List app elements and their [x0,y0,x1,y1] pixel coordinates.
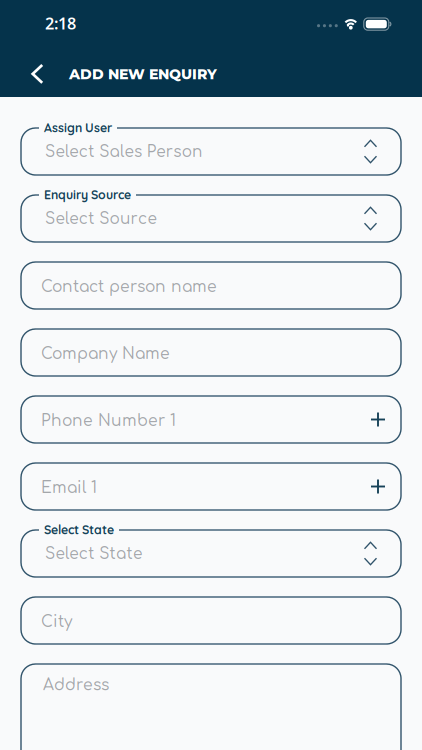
button[interactable]: Email 1 [21,463,401,510]
staticText: Select Source [45,211,156,228]
staticText: Select Sales Person [45,144,202,161]
button[interactable]: Select Source [21,195,401,242]
button[interactable]: Select Sales Person [21,128,401,175]
button[interactable] [0,0,54,21]
button[interactable]: Select State [21,530,401,577]
button[interactable]: Contact person name [21,262,401,309]
staticText: Enquiry Source [44,187,131,202]
staticText: Email 1 [41,479,97,497]
button[interactable]: City [21,597,401,644]
staticText: Company Name [41,345,170,363]
button[interactable]: Company Name [21,329,401,376]
staticText: Select State [45,546,142,563]
staticText: Assign User [44,120,112,135]
staticText: Select State [44,522,114,537]
staticText: City [41,613,72,631]
staticText: Address [43,676,109,694]
staticText: ADD NEW ENQUIRY [69,66,217,83]
button[interactable]: Phone Number 1 [21,396,401,443]
staticText: 2:18 [45,12,76,34]
button[interactable]: Address [21,664,401,750]
staticText: Phone Number 1 [41,412,176,430]
staticText: Contact person name [41,278,217,296]
